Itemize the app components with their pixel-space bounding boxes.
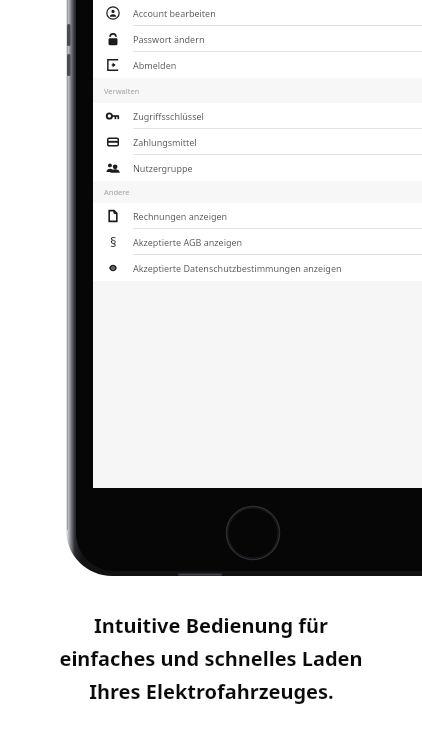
- staticText: §: [110, 233, 117, 251]
- staticText: Andere: [104, 187, 130, 197]
- button[interactable]: Rechnungen anzeigen: [93, 203, 422, 229]
- staticText: Verwalten: [104, 86, 140, 96]
- staticText: Akzeptierte Datenschutzbestimmungen anze…: [133, 262, 342, 274]
- staticText: Ihres Elektrofahrzeuges.: [89, 678, 334, 705]
- staticText: Account bearbeiten: [133, 7, 216, 19]
- button[interactable]: Zugriffsschlüssel: [93, 103, 422, 129]
- staticText: Nutzergruppe: [133, 162, 193, 174]
- button[interactable]: Akzeptierte Datenschutzbestimmungen anze…: [93, 255, 422, 281]
- button[interactable]: Account bearbeiten: [93, 0, 422, 26]
- staticText: Zahlungsmittel: [133, 136, 197, 148]
- button[interactable]: Nutzergruppe: [93, 155, 422, 181]
- button[interactable]: Abmelden: [93, 52, 422, 78]
- button[interactable]: Zahlungsmittel: [93, 129, 422, 155]
- staticText: Abmelden: [133, 59, 177, 71]
- staticText: einfaches und schnelles Laden: [59, 645, 363, 672]
- staticText: Rechnungen anzeigen: [133, 210, 228, 222]
- button[interactable]: §: [93, 229, 422, 255]
- staticText: Passwort ändern: [133, 33, 205, 45]
- button[interactable]: Passwort ändern: [93, 26, 422, 52]
- staticText: Intuitive Bedienung für: [94, 612, 328, 639]
- staticText: Zugriffsschlüssel: [133, 110, 204, 122]
- staticText: Akzeptierte AGB anzeigen: [133, 236, 243, 248]
